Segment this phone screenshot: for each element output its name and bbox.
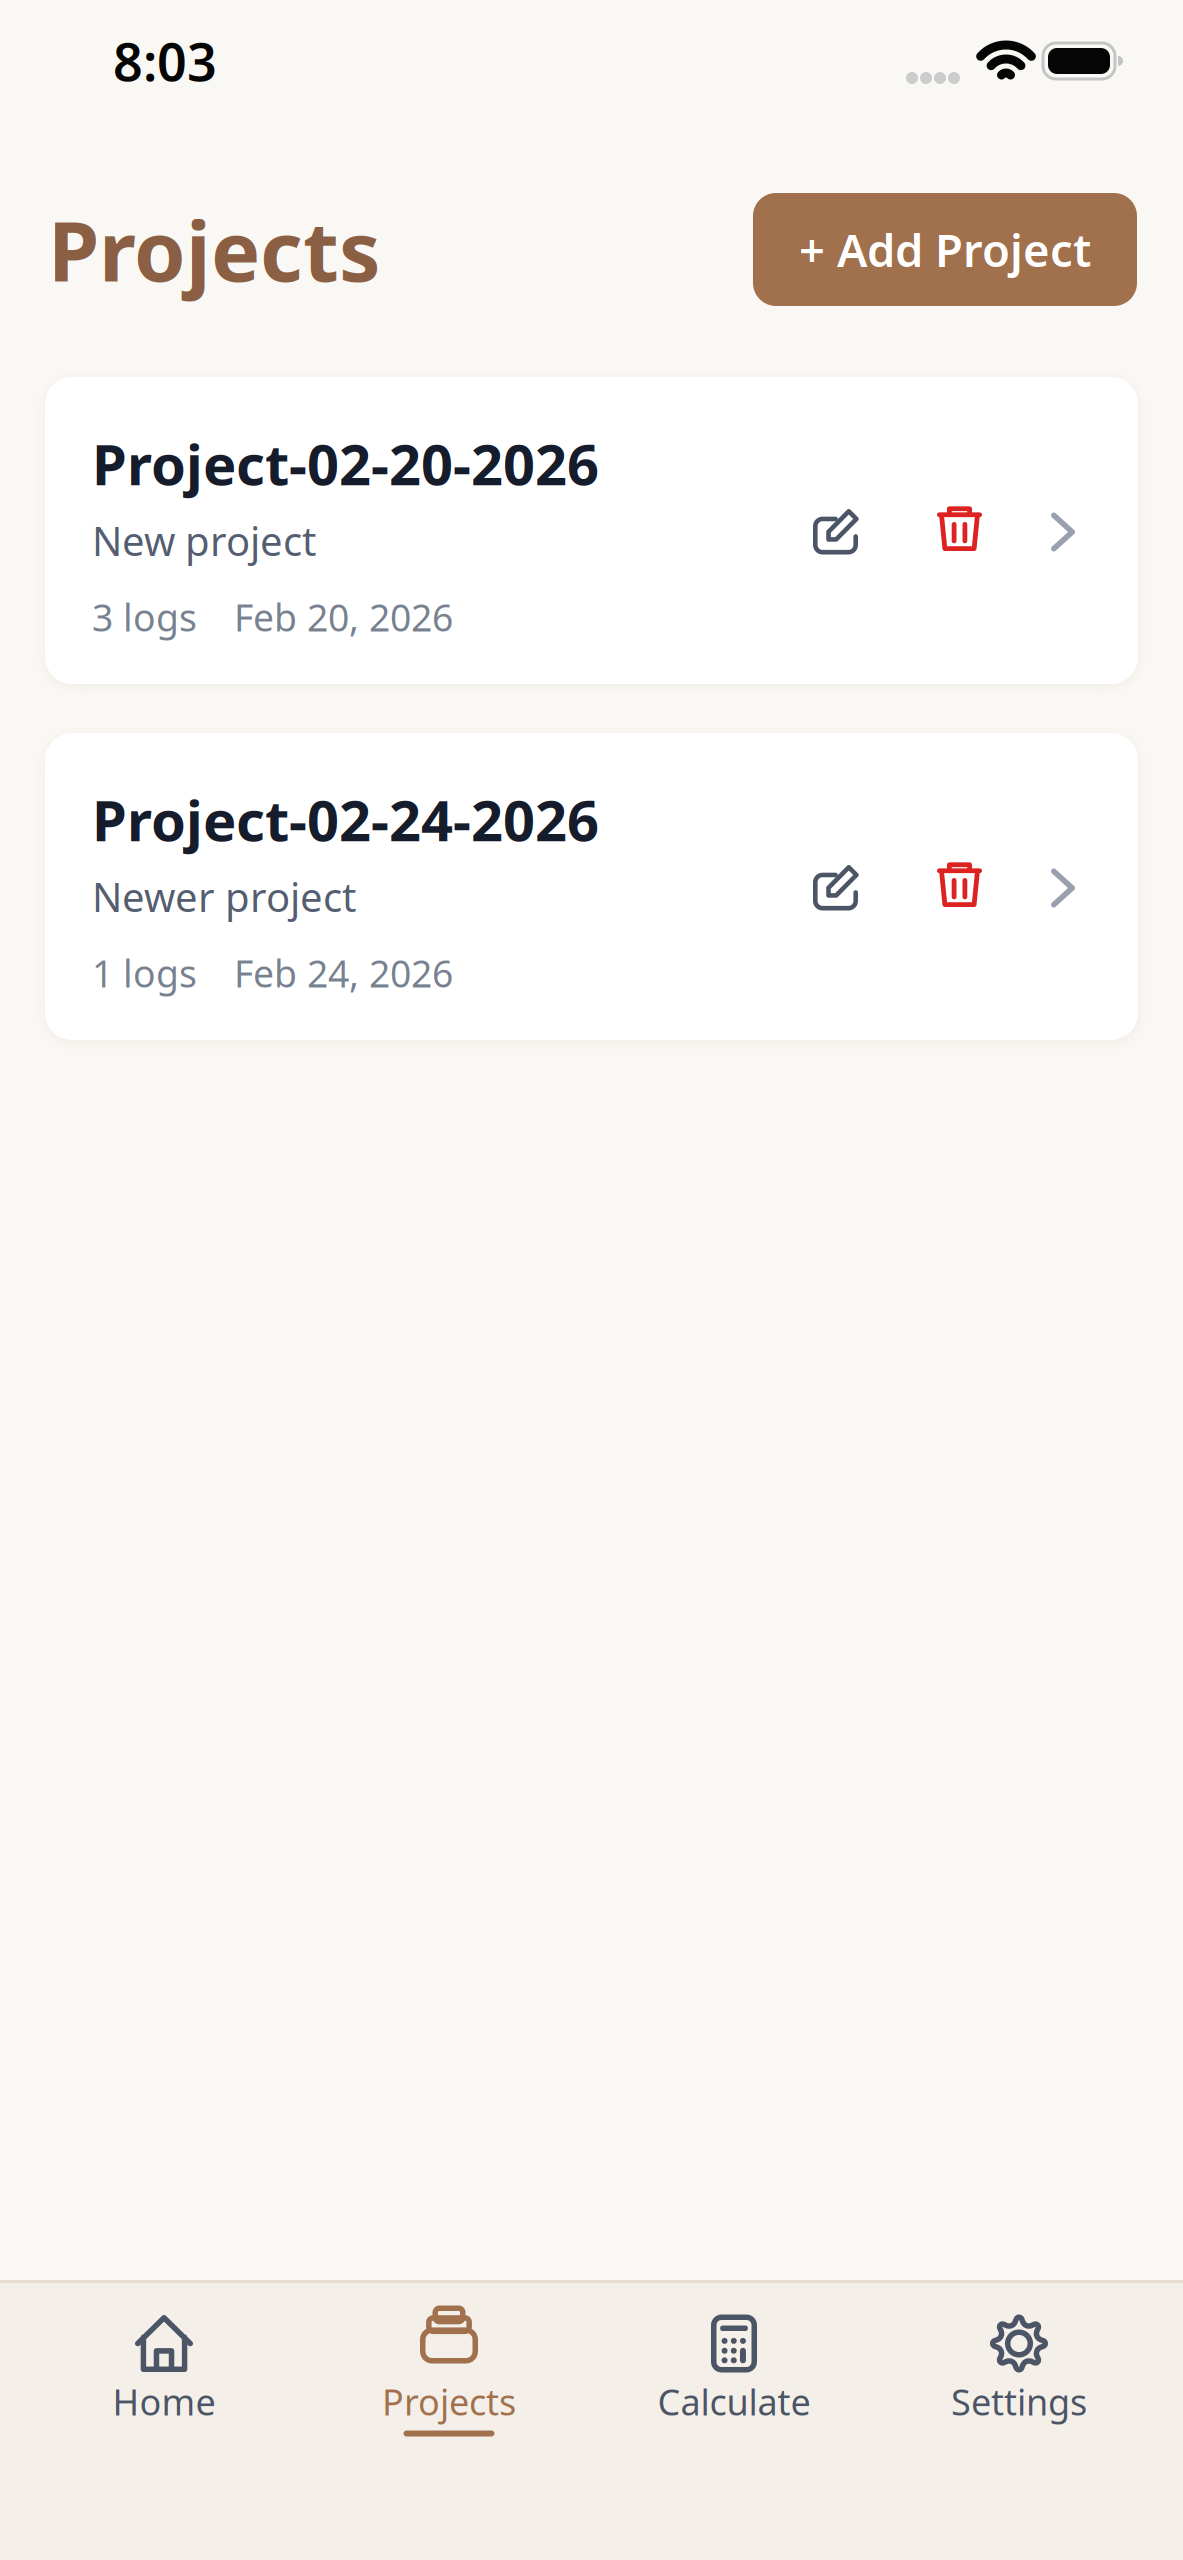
button[interactable]: Edit [796,844,875,931]
staticText: 1 logs [92,948,197,998]
staticText: + Add Project [799,219,1091,280]
button[interactable]: Home [21,2281,306,2560]
button[interactable]: Projects [306,2281,591,2560]
staticText: Calculate [657,2378,810,2425]
staticText: Projects [382,2378,516,2425]
staticText: New project [92,514,316,567]
button[interactable]: + Add Project [753,193,1137,306]
button[interactable]: Edit [796,488,875,575]
staticText: Project-02-24-2026 [92,782,599,857]
staticText: Projects [48,195,380,304]
button[interactable]: Settings [876,2281,1161,2560]
staticText: 8:03 [113,26,217,96]
button[interactable]: Delete [875,845,997,931]
button[interactable]: Calculate [591,2281,876,2560]
staticText: Settings [951,2378,1087,2425]
button[interactable]: Delete [875,489,997,575]
staticText: Project-02-20-2026 [92,426,599,501]
staticText: Newer project [92,870,356,923]
staticText: Home [112,2378,215,2425]
staticText: Feb 20, 2026 [234,592,453,642]
staticText: 3 logs [92,592,197,642]
staticText: Feb 24, 2026 [234,948,453,998]
